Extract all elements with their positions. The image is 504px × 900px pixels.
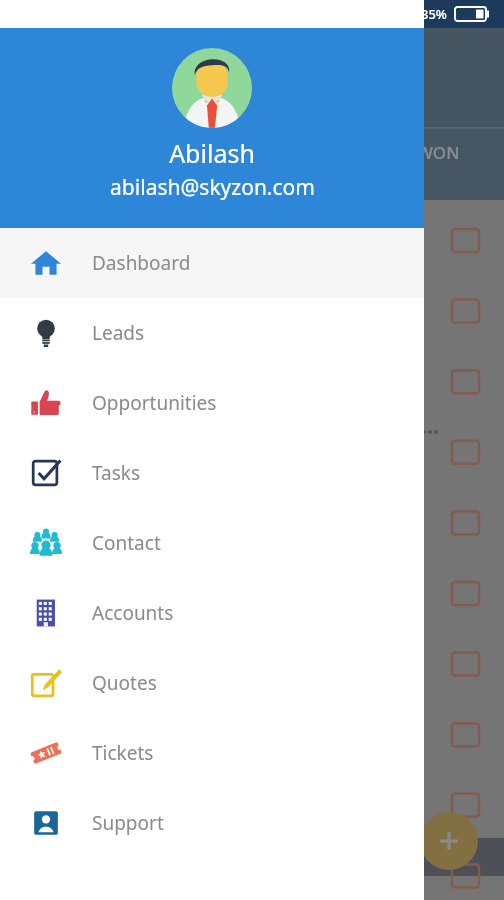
staticText: Tickets: [92, 740, 154, 766]
button[interactable]: Accounts: [0, 578, 424, 648]
button[interactable]: Opportunities: [0, 368, 424, 438]
staticText: Leads: [92, 320, 145, 346]
button[interactable]: WON: [417, 141, 460, 164]
staticText: Tasks: [92, 460, 141, 486]
button[interactable]: Add: [420, 812, 478, 870]
button[interactable]: Support: [0, 788, 424, 858]
staticText: Dashboard: [92, 250, 191, 276]
button[interactable]: Tasks: [0, 438, 424, 508]
staticText: Accounts: [92, 600, 174, 626]
staticText: 35%: [421, 5, 447, 23]
staticText: Contact: [92, 530, 161, 556]
button[interactable]: Quotes: [0, 648, 424, 718]
staticText: abilash@skyzon.com: [110, 173, 315, 202]
button[interactable]: Tickets: [0, 718, 424, 788]
staticText: Support: [92, 810, 164, 836]
button[interactable]: Leads: [0, 298, 424, 368]
staticText: Quotes: [92, 670, 157, 696]
button[interactable]: Dashboard: [0, 228, 424, 298]
staticText: Opportunities: [92, 390, 217, 416]
button[interactable]: Abilash: [0, 28, 424, 228]
staticText: Abilash: [169, 136, 255, 170]
button[interactable]: Contact: [0, 508, 424, 578]
